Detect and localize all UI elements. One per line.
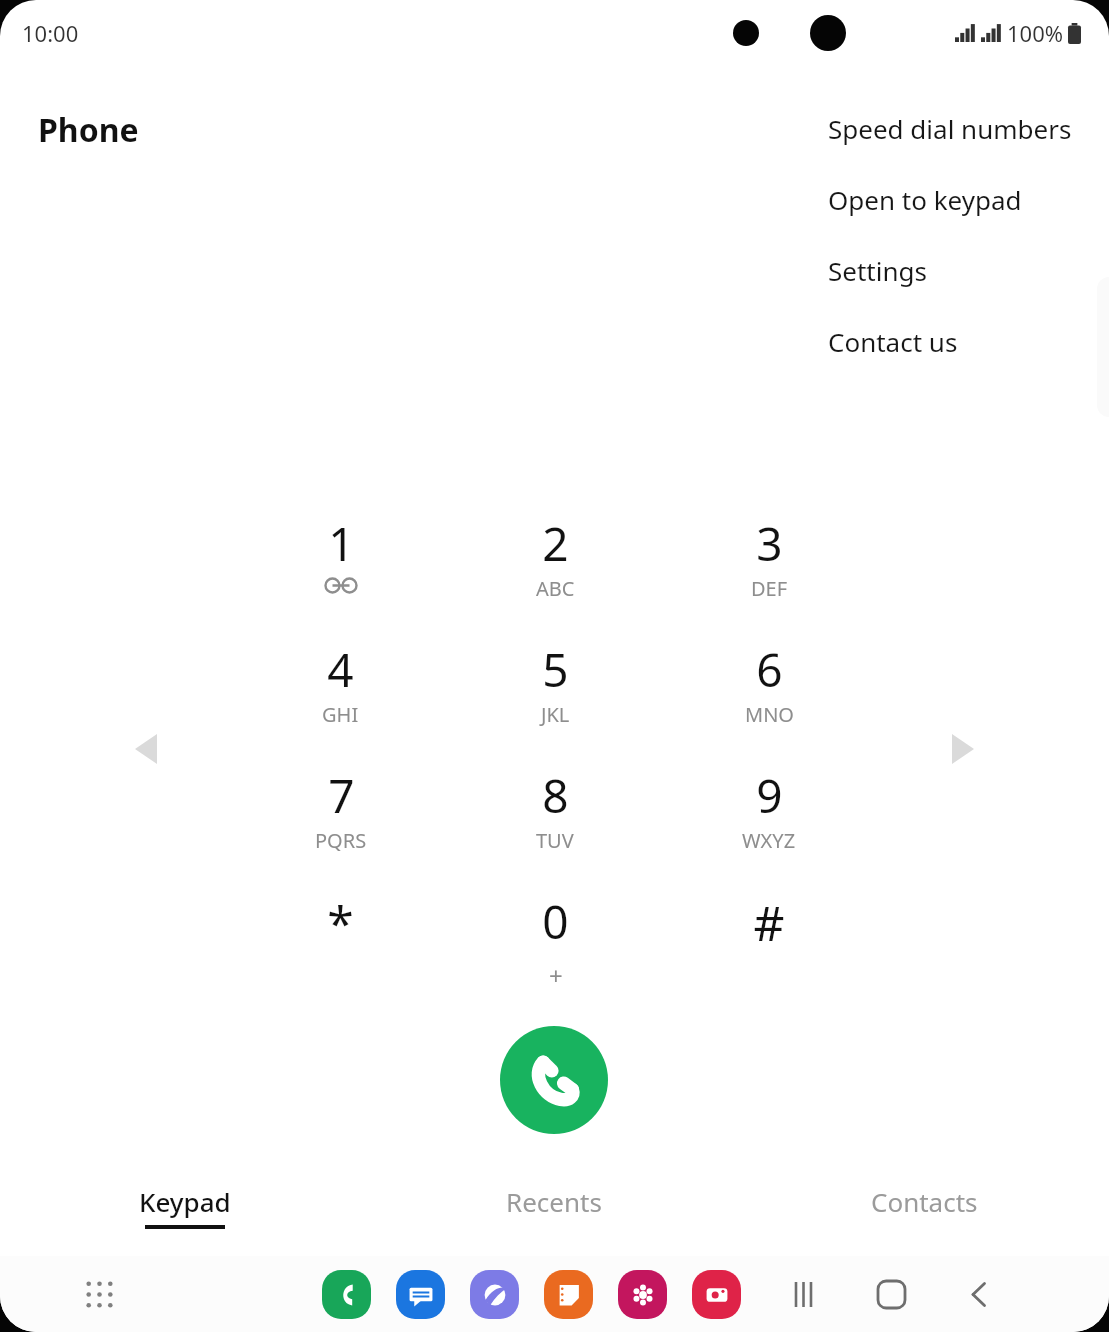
staticText: GHI bbox=[322, 701, 359, 728]
button[interactable]: Call bbox=[500, 1026, 608, 1134]
button[interactable]: 0 bbox=[448, 890, 662, 1010]
button[interactable]: Settings bbox=[791, 235, 1093, 306]
button[interactable]: Internet bbox=[470, 1270, 519, 1319]
button[interactable]: Notes bbox=[544, 1270, 593, 1319]
staticText: DEF bbox=[751, 575, 788, 602]
staticText: 9 bbox=[756, 764, 783, 827]
button[interactable]: Recents bbox=[369, 1184, 739, 1244]
button[interactable]: Previous bbox=[135, 734, 157, 764]
button[interactable]: * bbox=[233, 890, 448, 1010]
button[interactable]: 4 bbox=[233, 638, 448, 764]
staticText: Recents bbox=[506, 1184, 602, 1219]
staticText: * bbox=[327, 890, 354, 955]
button[interactable]: # bbox=[662, 890, 876, 1010]
staticText: 5 bbox=[542, 638, 569, 701]
staticText: 0 bbox=[542, 890, 569, 953]
staticText: 3 bbox=[756, 512, 783, 575]
staticText: Keypad bbox=[139, 1184, 231, 1219]
staticText: 4 bbox=[327, 638, 354, 701]
staticText: 6 bbox=[756, 638, 783, 701]
staticText: 100% bbox=[1007, 18, 1064, 48]
staticText: Contacts bbox=[871, 1184, 978, 1219]
staticText: ABC bbox=[536, 575, 575, 602]
staticText: # bbox=[753, 890, 785, 955]
button[interactable]: Messages bbox=[396, 1270, 445, 1319]
staticText: + bbox=[549, 959, 563, 992]
button[interactable]: Apps bbox=[76, 1271, 122, 1317]
button[interactable]: Recents bbox=[780, 1271, 826, 1317]
button[interactable]: Gallery bbox=[618, 1270, 667, 1319]
staticText: WXYZ bbox=[742, 827, 796, 854]
button[interactable]: Camera bbox=[692, 1270, 741, 1319]
button[interactable]: 6 bbox=[662, 638, 876, 764]
button[interactable]: Open to keypad bbox=[791, 164, 1093, 235]
staticText: 7 bbox=[328, 764, 355, 827]
staticText: TUV bbox=[536, 827, 574, 854]
staticText: Open to keypad bbox=[828, 182, 1022, 217]
staticText: Settings bbox=[828, 253, 927, 288]
button[interactable]: Contacts bbox=[739, 1184, 1109, 1244]
staticText: 10:00 bbox=[22, 18, 79, 48]
staticText: Phone bbox=[38, 108, 139, 152]
button[interactable]: 5 bbox=[448, 638, 662, 764]
button[interactable]: Phone bbox=[322, 1270, 371, 1319]
staticText: 1 bbox=[328, 512, 355, 575]
button[interactable]: Speed dial numbers bbox=[791, 93, 1093, 164]
button[interactable]: Contact us bbox=[791, 306, 1093, 377]
staticText: 2 bbox=[542, 512, 569, 575]
button[interactable]: Next bbox=[952, 734, 974, 764]
staticText: Contact us bbox=[828, 324, 958, 359]
button[interactable]: 1 bbox=[233, 512, 448, 638]
button[interactable]: Keypad bbox=[0, 1184, 369, 1244]
button[interactable]: Home bbox=[868, 1271, 914, 1317]
button[interactable]: 7 bbox=[233, 764, 448, 890]
staticText: JKL bbox=[541, 701, 570, 728]
staticText: PQRS bbox=[315, 827, 367, 854]
staticText: MNO bbox=[745, 701, 794, 728]
button[interactable]: Back bbox=[956, 1271, 1002, 1317]
staticText: Speed dial numbers bbox=[828, 111, 1072, 146]
button[interactable]: 8 bbox=[448, 764, 662, 890]
staticText: 8 bbox=[542, 764, 569, 827]
button[interactable]: 9 bbox=[662, 764, 876, 890]
button[interactable]: 3 bbox=[662, 512, 876, 638]
button[interactable]: 2 bbox=[448, 512, 662, 638]
